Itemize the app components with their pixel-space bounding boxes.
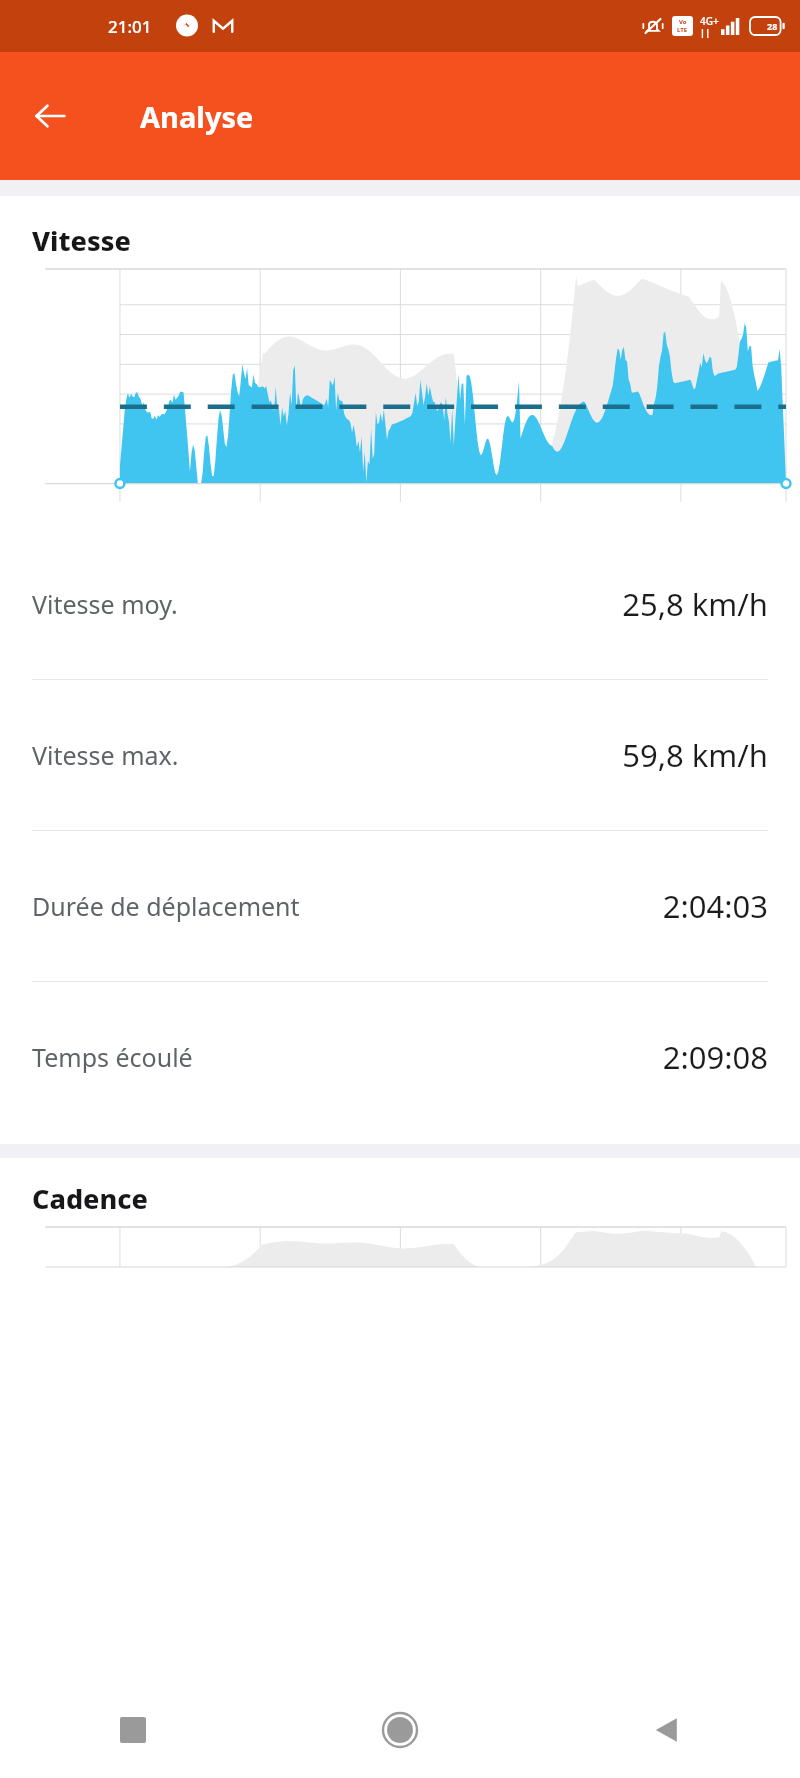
staticText: 25,8 km/h bbox=[622, 583, 768, 625]
staticText: Analyse bbox=[140, 97, 254, 136]
button[interactable]: Vitesse moy. bbox=[0, 529, 800, 679]
staticText: Temps écoulé bbox=[32, 1040, 193, 1074]
staticText: LTE bbox=[677, 26, 688, 34]
staticText: 2:09:08 bbox=[662, 1036, 768, 1078]
staticText: Cadence bbox=[32, 1180, 148, 1217]
button[interactable]: Home bbox=[266, 1682, 533, 1778]
staticText: Vitesse bbox=[32, 222, 131, 259]
staticText: 59,8 km/h bbox=[622, 734, 768, 776]
button[interactable]: Durée de déplacement bbox=[0, 831, 800, 981]
staticText: Vitesse max. bbox=[32, 738, 179, 772]
button[interactable]: Recent apps bbox=[0, 1682, 266, 1778]
staticText: Durée de déplacement bbox=[32, 889, 300, 923]
staticText: 4G+ bbox=[700, 14, 719, 28]
staticText: Vitesse moy. bbox=[32, 587, 178, 621]
staticText: 28 bbox=[767, 20, 778, 32]
staticText: Vo bbox=[679, 18, 687, 26]
staticText: 21:01 bbox=[108, 15, 152, 38]
button[interactable]: Temps écoulé bbox=[0, 982, 800, 1132]
staticText: 2:04:03 bbox=[662, 885, 768, 927]
button[interactable]: Back bbox=[533, 1682, 800, 1778]
button[interactable]: Vitesse max. bbox=[0, 680, 800, 830]
button[interactable]: Back bbox=[22, 88, 78, 144]
